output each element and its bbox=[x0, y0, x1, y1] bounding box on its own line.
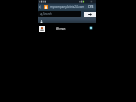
staticText: Woman bbox=[56, 27, 66, 31]
button[interactable]: Search bbox=[38, 11, 81, 17]
staticText: mycompany.bitrix24.com bbox=[50, 5, 85, 9]
staticText: CYB bbox=[88, 5, 94, 9]
button[interactable]: Go bbox=[84, 12, 96, 17]
button[interactable]: Woman bbox=[38, 23, 96, 36]
staticText: Search bbox=[43, 12, 52, 16]
button[interactable]: Back bbox=[38, 5, 42, 9]
